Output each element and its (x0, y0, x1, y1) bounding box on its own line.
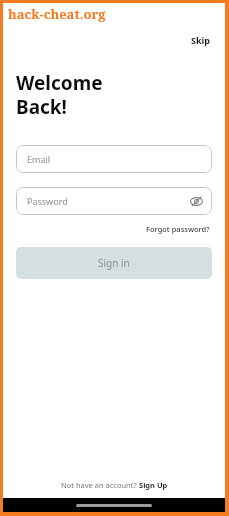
staticText: Welcome Back! (16, 70, 103, 119)
button[interactable]: Not have an account? (3, 475, 225, 495)
button[interactable]: Email (16, 145, 212, 173)
staticText: Email (27, 153, 51, 165)
staticText: Password (27, 195, 68, 207)
staticText: Skip (191, 34, 210, 46)
staticText: Not have an account? (61, 480, 139, 490)
button[interactable]: Show password (187, 192, 205, 210)
button[interactable]: Password (16, 187, 212, 215)
staticText: Sign in (98, 256, 130, 270)
button[interactable]: Sign in (16, 247, 212, 279)
button[interactable]: Skip (187, 31, 214, 49)
button[interactable]: Forgot password? (144, 222, 212, 236)
staticText: Sign Up (139, 480, 168, 490)
staticText: Forgot password? (146, 224, 210, 234)
staticText: hack-cheat.org (8, 5, 106, 23)
